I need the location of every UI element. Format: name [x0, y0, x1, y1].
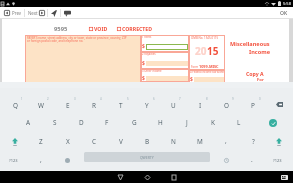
staticText: CORRECTED [122, 25, 153, 32]
button[interactable]: K [200, 113, 226, 132]
button[interactable]: 3 [55, 95, 81, 114]
staticText: H [158, 118, 163, 127]
staticText: F [105, 118, 109, 127]
staticText: U [171, 101, 176, 110]
button[interactable]: , [28, 151, 54, 170]
button[interactable]: Highlight [48, 7, 60, 19]
button[interactable]: 0 [240, 95, 266, 114]
staticText: 7 [179, 97, 181, 101]
staticText: 8 [206, 97, 208, 101]
button[interactable]: 1 [2, 95, 28, 114]
staticText: ?123 [273, 158, 282, 163]
staticText: ?123 [9, 158, 18, 163]
button[interactable]: Backspace [266, 95, 292, 114]
staticText: 0 [259, 97, 261, 101]
staticText: 1099-MISC [199, 64, 219, 69]
button[interactable]: 9 [213, 95, 239, 114]
button[interactable]: X [55, 132, 81, 151]
staticText: 3 [74, 97, 76, 101]
staticText: $ [142, 75, 145, 82]
button[interactable]: F [94, 113, 120, 132]
button[interactable]: Home [134, 171, 161, 183]
button[interactable]: Recent [213, 151, 239, 170]
button[interactable]: , [213, 132, 239, 151]
button[interactable]: G [121, 113, 147, 132]
staticText: 4 Federal income tax withheld [190, 70, 225, 74]
staticText: For [257, 77, 264, 83]
button[interactable]: J [174, 113, 200, 132]
staticText: B [145, 137, 150, 146]
staticText: Copy A [246, 70, 264, 77]
button[interactable]: D [68, 113, 94, 132]
button[interactable]: QWERTY [84, 152, 210, 162]
button[interactable]: ?123 [0, 151, 26, 170]
staticText: E [66, 101, 70, 110]
staticText: 4 [100, 97, 102, 101]
staticText: or foreign postal code, and telephone no… [27, 39, 84, 43]
staticText: $ [142, 43, 145, 50]
button[interactable]: Shift [266, 132, 292, 151]
staticText: , [40, 155, 42, 164]
button[interactable]: Comment [61, 7, 74, 19]
staticText: Miscellaneous [230, 40, 270, 48]
staticText: 9 [232, 97, 234, 101]
button[interactable]: Back [107, 171, 134, 183]
staticText: Income [249, 48, 270, 56]
staticText: PAYER'S name, street address, city or to… [27, 36, 127, 40]
staticText: 2 Royalties [142, 52, 156, 56]
button[interactable]: Z [28, 132, 54, 151]
button[interactable]: M [187, 132, 213, 151]
button[interactable]: 6 [134, 95, 160, 114]
staticText: 20 [195, 44, 207, 58]
staticText: R [92, 101, 96, 110]
staticText: T [119, 101, 123, 110]
button[interactable]: Switch language [54, 151, 80, 170]
staticText: 1 Rents [142, 35, 152, 39]
button[interactable]: H [147, 113, 173, 132]
staticText: 5 [127, 97, 129, 101]
staticText: L [237, 118, 241, 127]
staticText: J [186, 118, 188, 127]
staticText: 1 [21, 97, 23, 101]
staticText: QWERTY [140, 155, 154, 160]
button[interactable]: C [81, 132, 107, 151]
button[interactable]: 5 [108, 95, 134, 114]
staticText: W [38, 101, 44, 110]
button[interactable]: Enter [258, 113, 288, 132]
staticText: D [79, 118, 84, 127]
button[interactable]: Recents [161, 171, 187, 183]
button[interactable]: V [108, 132, 134, 151]
button[interactable]: S [42, 113, 68, 132]
button[interactable]: 2 [28, 95, 54, 114]
button[interactable]: . [239, 151, 265, 170]
staticText: $ [190, 76, 193, 83]
button[interactable]: 7 [160, 95, 186, 114]
staticText: VOID [94, 25, 108, 32]
button[interactable]: Next [25, 7, 47, 19]
staticText: 3 Other income [142, 69, 162, 73]
button[interactable]: Shift [2, 132, 28, 151]
button[interactable]: A [15, 113, 41, 132]
button[interactable]: 4 [81, 95, 107, 114]
staticText: V [119, 137, 123, 146]
staticText: C [92, 137, 97, 146]
button[interactable]: OK [275, 7, 293, 19]
button[interactable]: ? [240, 132, 266, 151]
staticText: P [251, 101, 255, 110]
staticText: ? [252, 137, 255, 146]
staticText: M [197, 137, 203, 146]
staticText: 6 [153, 97, 155, 101]
button[interactable]: N [160, 132, 186, 151]
staticText: Z [39, 137, 43, 146]
staticText: N [171, 137, 176, 146]
button[interactable]: B [134, 132, 160, 151]
button[interactable]: Prev [0, 7, 24, 19]
button[interactable]: Hide keyboard [276, 171, 293, 183]
button[interactable]: 8 [187, 95, 213, 114]
staticText: K [211, 118, 215, 127]
button[interactable]: ?123 [264, 151, 290, 170]
staticText: 15 [207, 44, 219, 58]
staticText: 2 [47, 97, 49, 101]
staticText: A [26, 118, 31, 127]
button[interactable]: L [226, 113, 252, 132]
